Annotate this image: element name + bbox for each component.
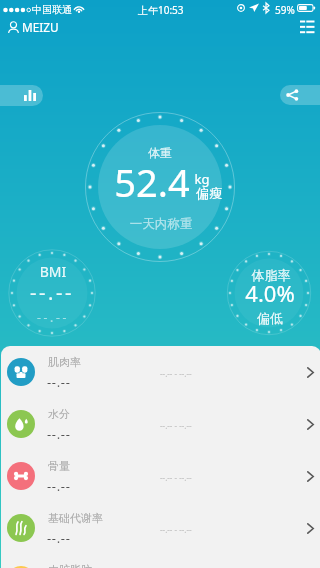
- staticText: 59%: [275, 3, 295, 17]
- staticText: 骨量: [48, 459, 70, 473]
- staticText: --.-- - --.--: [160, 472, 192, 483]
- staticText: --.--: [47, 425, 71, 443]
- staticText: MEIZU: [22, 19, 59, 35]
- staticText: BMI: [0, 262, 183, 281]
- staticText: --.--: [47, 477, 71, 495]
- staticText: 上午10:53: [138, 3, 184, 17]
- staticText: 偏瘦: [79, 185, 320, 201]
- staticText: --.--: [0, 309, 183, 325]
- staticText: 一天内称重: [31, 216, 291, 232]
- staticText: --.-- - --.--: [160, 368, 192, 379]
- staticText: 52.4: [22, 156, 282, 208]
- staticText: --.--: [47, 373, 71, 391]
- staticText: kg: [72, 170, 320, 188]
- staticText: --.--: [47, 529, 71, 547]
- staticText: 体重: [30, 145, 290, 160]
- button[interactable]: 肌肉率: [0, 346, 320, 398]
- staticText: 体脂率: [141, 267, 320, 283]
- button[interactable]: 骨量: [0, 450, 320, 502]
- staticText: 肌肉率: [48, 355, 81, 369]
- staticText: 偏低: [140, 310, 320, 326]
- button[interactable]: Share: [280, 85, 320, 105]
- staticText: 中国联通: [32, 3, 72, 16]
- button[interactable]: MEIZU: [2, 16, 67, 38]
- staticText: --.-- - --.--: [160, 420, 192, 431]
- button[interactable]: Statistics: [0, 85, 43, 106]
- staticText: 水分: [48, 407, 70, 421]
- button[interactable]: 内脏脂肪: [0, 554, 320, 568]
- staticText: 4.0%: [140, 278, 320, 308]
- button[interactable]: Records: [294, 14, 320, 39]
- staticText: 基础代谢率: [48, 511, 103, 525]
- staticText: --.--: [0, 279, 182, 306]
- staticText: --.-- - --.--: [160, 524, 192, 535]
- button[interactable]: 基础代谢率: [0, 502, 320, 554]
- staticText: 内脏脂肪: [48, 563, 92, 568]
- button[interactable]: 水分: [0, 398, 320, 450]
